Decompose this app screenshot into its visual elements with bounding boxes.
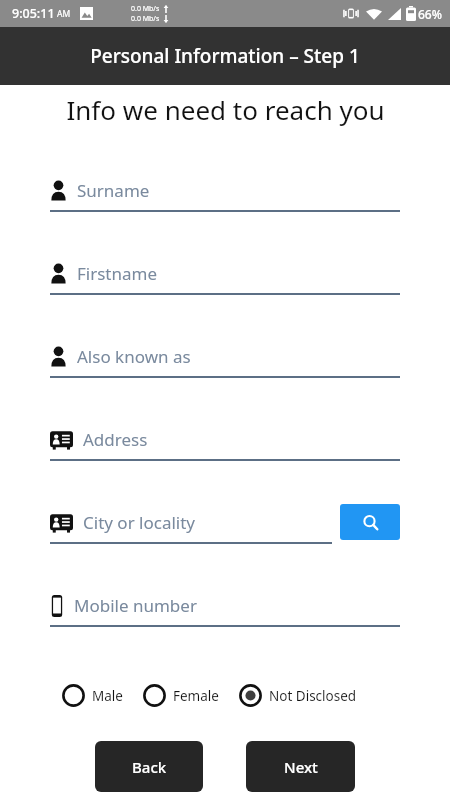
button[interactable]: Female — [143, 684, 219, 707]
staticText: Female — [173, 687, 219, 705]
staticText: 0.0 Mb/s — [131, 4, 160, 14]
staticText: Male — [92, 687, 123, 705]
staticText: Next — [284, 757, 318, 777]
button[interactable]: Search city or locality — [340, 504, 400, 540]
button[interactable]: Next — [246, 741, 355, 792]
button[interactable]: Not Disclosed — [239, 684, 357, 707]
staticText: 9:05:11 — [12, 5, 55, 22]
staticText: AM — [57, 8, 71, 20]
staticText: City or locality — [83, 511, 196, 534]
staticText: Info we need to reach you — [66, 92, 385, 127]
button[interactable]: Firstname — [50, 262, 400, 285]
button[interactable]: Mobile number — [50, 594, 400, 617]
staticText: 0.0 Mb/s — [131, 14, 160, 24]
button[interactable]: Back — [95, 741, 203, 792]
staticText: Back — [132, 757, 167, 777]
staticText: Mobile number — [74, 594, 197, 617]
button[interactable]: City or locality — [50, 511, 332, 534]
staticText: 66% — [418, 6, 442, 22]
button[interactable]: Male — [62, 684, 123, 707]
staticText: Surname — [77, 179, 150, 202]
staticText: Address — [83, 428, 148, 451]
staticText: Personal Information – Step 1 — [90, 43, 360, 69]
button[interactable]: Address — [50, 428, 400, 451]
button[interactable]: Surname — [50, 179, 400, 202]
button[interactable]: Also known as — [50, 345, 400, 368]
staticText: Not Disclosed — [269, 687, 357, 705]
staticText: Also known as — [77, 345, 191, 368]
staticText: Firstname — [77, 262, 158, 285]
